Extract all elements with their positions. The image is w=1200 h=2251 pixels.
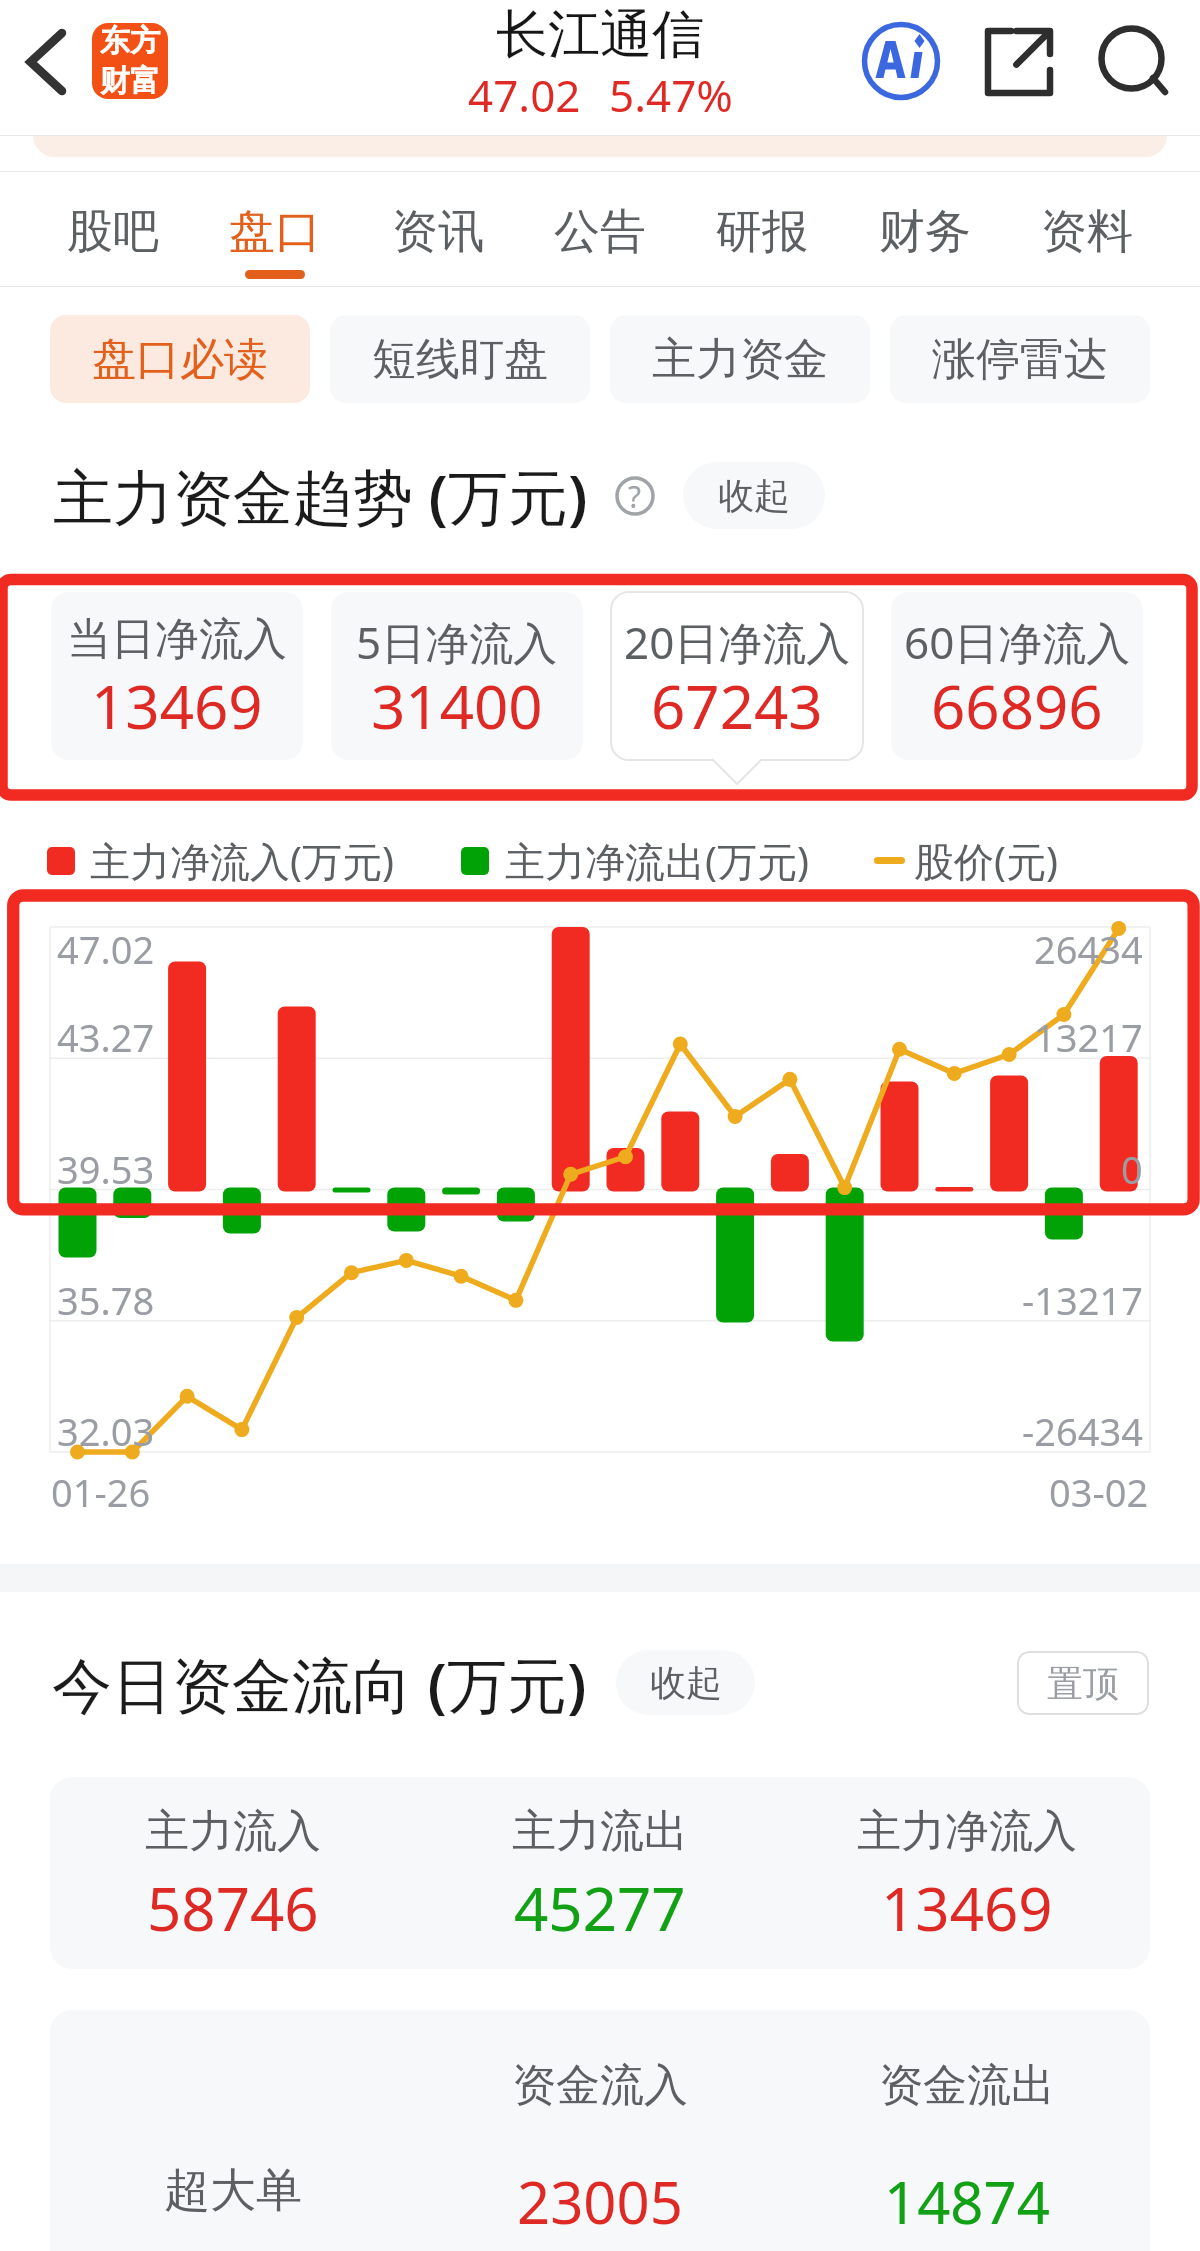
staticText: 主力资金 xyxy=(652,332,828,387)
staticText: 13469 xyxy=(91,665,263,747)
staticText: 主力净流入 xyxy=(857,1804,1077,1859)
staticText: 66896 xyxy=(931,665,1103,747)
button[interactable]: Back xyxy=(16,20,96,100)
button[interactable]: 主力资金 xyxy=(610,315,870,403)
button[interactable]: 公告 xyxy=(542,172,658,286)
staticText: 资金流出 xyxy=(879,2058,1055,2113)
staticText: 26434 xyxy=(1034,923,1143,975)
staticText: 13217 xyxy=(1034,1011,1143,1063)
button[interactable]: 资料 xyxy=(1029,172,1145,286)
staticText: 资金流入 xyxy=(512,2058,688,2113)
staticText: 今日资金流向 (万元) xyxy=(52,1643,587,1725)
staticText: 58746 xyxy=(147,1867,319,1949)
staticText: 盘口 xyxy=(229,203,321,261)
staticText: 5日净流入 xyxy=(356,612,558,672)
staticText: 60日净流入 xyxy=(904,612,1131,672)
staticText: 67243 xyxy=(651,665,823,747)
button[interactable]: 60日净流入 xyxy=(891,592,1143,760)
staticText: 03-02 xyxy=(1049,1466,1149,1518)
staticText: 01-26 xyxy=(51,1466,151,1518)
button[interactable]: 盘口 xyxy=(217,172,333,286)
staticText: 32.03 xyxy=(57,1405,155,1457)
staticText: 20日净流入 xyxy=(624,612,851,672)
staticText: 5.47% xyxy=(609,65,733,125)
staticText: 14874 xyxy=(884,2162,1050,2241)
staticText: 财务 xyxy=(879,203,971,261)
staticText: 盘口必读 xyxy=(92,332,268,387)
staticText: 东方 xyxy=(100,23,160,60)
staticText: 收起 xyxy=(718,473,790,518)
button[interactable]: 20日净流入 xyxy=(611,592,863,760)
staticText: 超大单 xyxy=(164,2162,302,2220)
button[interactable]: 股吧 xyxy=(55,172,171,286)
button[interactable]: 财务 xyxy=(867,172,983,286)
button[interactable]: Share xyxy=(986,29,1052,95)
button[interactable]: 涨停雷达 xyxy=(890,315,1150,403)
staticText: 涨停雷达 xyxy=(932,332,1108,387)
staticText: 置顶 xyxy=(1047,1661,1119,1706)
staticText: 13469 xyxy=(881,1867,1053,1949)
staticText: 39.53 xyxy=(57,1143,155,1195)
staticText: 资料 xyxy=(1041,203,1133,261)
staticText: 财富 xyxy=(100,62,160,98)
button[interactable]: Help xyxy=(615,476,655,516)
staticText: 主力净流出(万元) xyxy=(505,833,809,888)
staticText: ? xyxy=(628,476,642,516)
staticText: 0 xyxy=(1121,1143,1143,1195)
staticText: 当日净流入 xyxy=(67,612,287,667)
staticText: 47.02 xyxy=(468,65,581,125)
staticText: 23005 xyxy=(517,2162,683,2241)
button[interactable]: Search xyxy=(1094,22,1170,98)
staticText: 47.02 xyxy=(57,923,155,975)
staticText: 主力净流入(万元) xyxy=(90,833,394,888)
staticText: 43.27 xyxy=(57,1011,155,1063)
button[interactable]: 研报 xyxy=(704,172,820,286)
staticText: 股吧 xyxy=(67,203,159,261)
staticText: 主力流入 xyxy=(145,1804,321,1859)
button[interactable]: 当日净流入 xyxy=(51,592,303,760)
staticText: 35.78 xyxy=(57,1274,155,1326)
staticText: 研报 xyxy=(716,203,808,261)
staticText: 公告 xyxy=(554,203,646,261)
staticText: -26434 xyxy=(1022,1405,1143,1457)
staticText: 资讯 xyxy=(392,203,484,261)
button[interactable]: 盘口必读 xyxy=(50,315,310,403)
staticText: 主力流出 xyxy=(512,1804,688,1859)
button[interactable]: 短线盯盘 xyxy=(330,315,590,403)
button[interactable]: 资讯 xyxy=(380,172,496,286)
staticText: 31400 xyxy=(371,665,543,747)
staticText: -13217 xyxy=(1022,1274,1143,1326)
staticText: 主力资金趋势 (万元) xyxy=(53,455,588,537)
staticText: 收起 xyxy=(650,1660,722,1705)
button[interactable]: 5日净流入 xyxy=(331,592,583,760)
button[interactable]: 置顶 xyxy=(1017,1651,1149,1715)
button[interactable]: 收起 xyxy=(616,1650,755,1715)
staticText: 长江通信 xyxy=(496,2,704,68)
staticText: 股价(元) xyxy=(914,833,1058,888)
button[interactable]: 收起 xyxy=(683,462,825,529)
staticText: 45277 xyxy=(514,1867,686,1949)
staticText: 短线盯盘 xyxy=(372,332,548,387)
button[interactable]: AI assistant xyxy=(861,21,941,101)
